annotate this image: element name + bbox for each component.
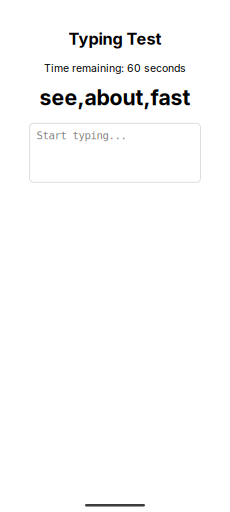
staticText: see,about,fast (39, 84, 190, 110)
button[interactable]: Start typing... (29, 123, 200, 182)
staticText: Typing Test (68, 29, 161, 49)
staticText: Start typing... (36, 129, 126, 142)
staticText: Time remaining: 60 seconds (44, 62, 186, 74)
